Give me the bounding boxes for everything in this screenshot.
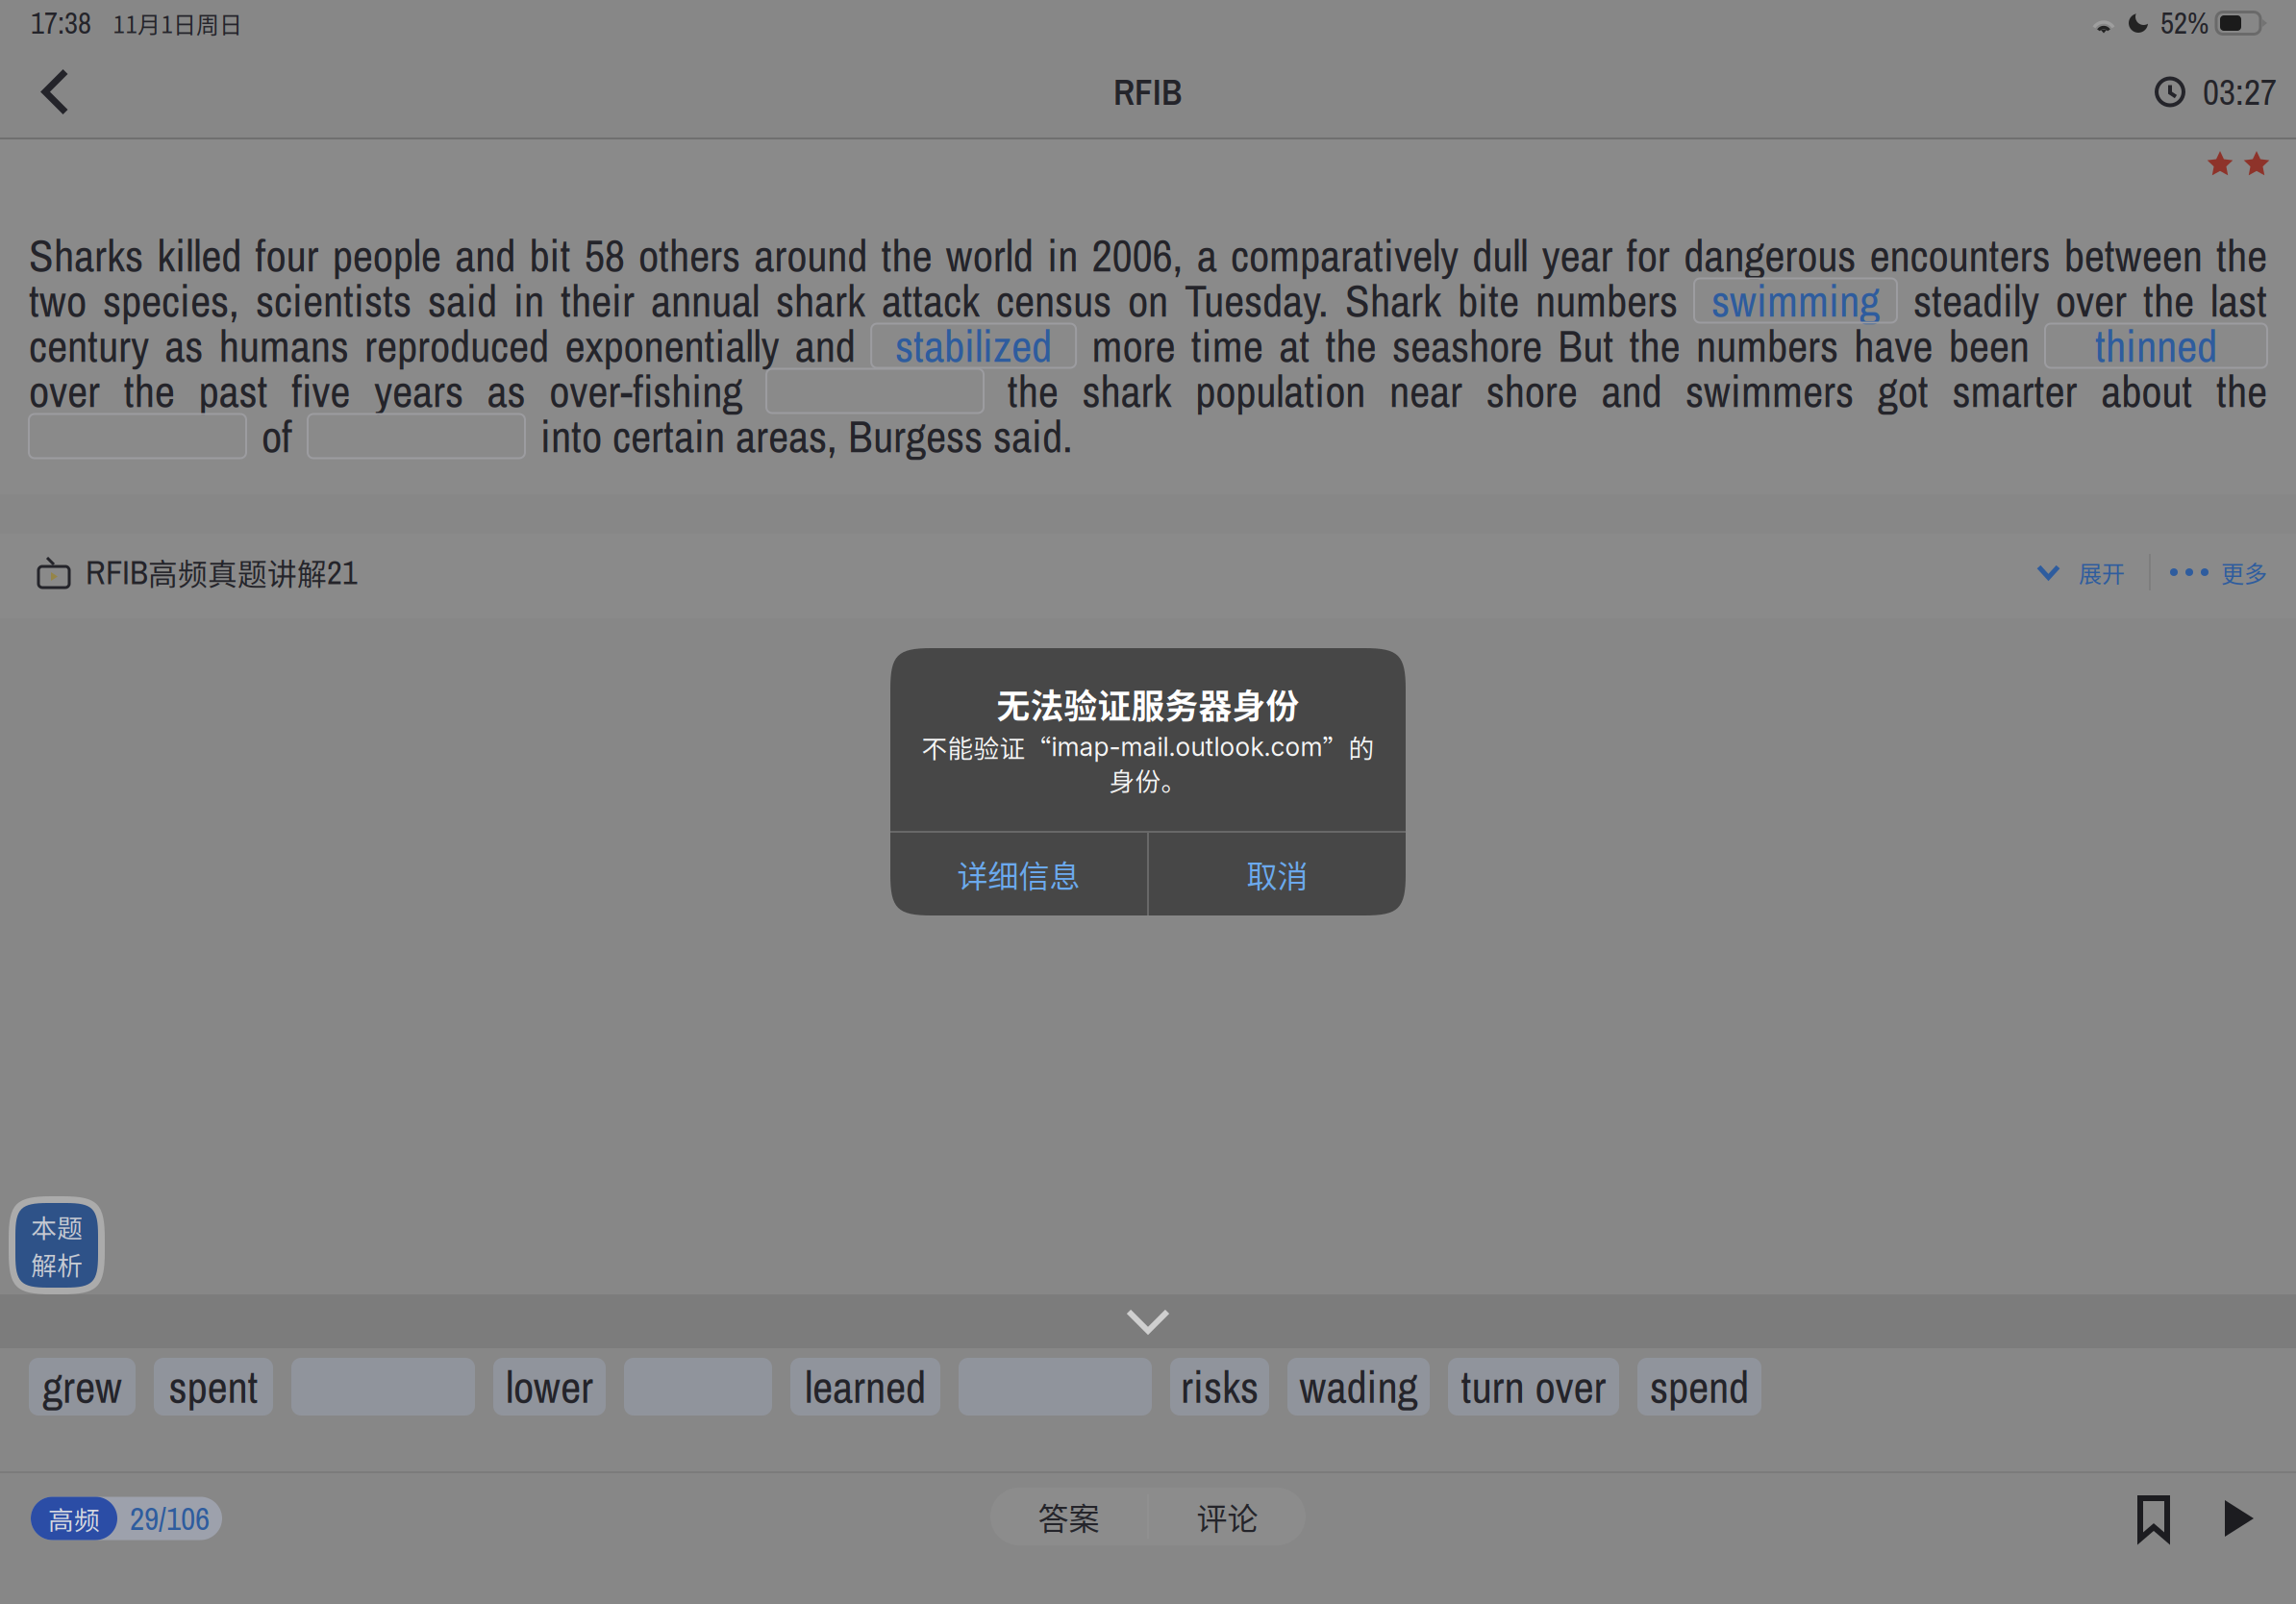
staticText: over-fishing (549, 361, 743, 421)
staticText: last (2210, 270, 2267, 331)
staticText: 身份。 (1109, 761, 1187, 798)
staticText: the (1629, 316, 1680, 376)
staticText: year (1542, 225, 1613, 286)
staticText: grew (42, 1356, 122, 1417)
staticText: time (1191, 316, 1263, 376)
staticText: and (1601, 361, 1662, 421)
button[interactable]: 评论 (1149, 1488, 1306, 1545)
staticText: and (795, 316, 856, 376)
staticText: for (1627, 225, 1670, 286)
staticText: century (29, 316, 149, 376)
staticText: numbers (1696, 316, 1838, 376)
button[interactable]: Empty answer blank (308, 414, 525, 458)
button[interactable]: 高频 (31, 1497, 222, 1540)
button[interactable]: grew (29, 1358, 136, 1416)
staticText: 高频 (48, 1500, 100, 1537)
button[interactable]: Collapse word bank (0, 1294, 2296, 1348)
button[interactable]: 详细信息 (890, 833, 1147, 915)
button[interactable]: Difficulty star (2207, 150, 2234, 178)
staticText: learned (805, 1356, 926, 1417)
staticText: been (1949, 316, 2029, 376)
button[interactable]: Question analysis (9, 1196, 105, 1294)
button[interactable]: Empty answer blank (766, 369, 984, 413)
button[interactable]: thinned (2045, 324, 2267, 368)
button[interactable]: risks (1170, 1358, 1269, 1416)
staticText: census (996, 270, 1111, 331)
button[interactable]: swimming (1694, 278, 1897, 323)
staticText: two (29, 270, 87, 331)
staticText: RFIB (1113, 68, 1183, 116)
button[interactable]: Empty answer blank (29, 414, 246, 458)
staticText: species, (103, 270, 239, 331)
staticText: into certain areas, Burgess said. (540, 406, 1073, 466)
staticText: Shark (1345, 270, 1441, 331)
staticText: as (487, 361, 526, 421)
staticText: 21 (327, 550, 358, 595)
staticText: Tuesday. (1185, 270, 1329, 331)
staticText: others (638, 225, 740, 286)
button[interactable]: Timer 03:27 (2157, 46, 2277, 138)
button[interactable]: stabilized (871, 324, 1076, 368)
button[interactable]: spent (154, 1358, 273, 1416)
button[interactable]: lower (493, 1358, 606, 1416)
staticText: 58 (584, 225, 625, 286)
staticText: scientists (256, 270, 412, 331)
button[interactable]: 更多 (2175, 555, 2267, 589)
button[interactable]: 展开 (2036, 555, 2125, 589)
button[interactable]: RFIB (38, 550, 358, 595)
staticText: dull (1472, 225, 1528, 286)
staticText: world (946, 225, 1033, 286)
button[interactable]: 取消 (1149, 833, 1406, 915)
staticText: Sharks (29, 225, 143, 286)
staticText: in (1047, 225, 1078, 286)
button[interactable]: learned (790, 1358, 940, 1416)
staticText: dangerous (1684, 225, 1856, 286)
staticText: lower (506, 1356, 593, 1417)
staticText: four (255, 225, 319, 286)
staticText: exponentially (565, 316, 779, 376)
button[interactable]: turn over (1448, 1358, 1619, 1416)
staticText: 2006, (1092, 225, 1183, 286)
button[interactable]: Difficulty star (2243, 150, 2270, 178)
button[interactable]: spend (1637, 1358, 1761, 1416)
staticText: people (333, 225, 441, 286)
button[interactable]: Bookmark (2108, 1495, 2200, 1541)
staticText: RFIB (86, 550, 148, 595)
button[interactable]: 答案 (990, 1488, 1147, 1545)
staticText: the (2143, 270, 2194, 331)
staticText: bite (1458, 270, 1519, 331)
button[interactable]: Play audio (2200, 1495, 2277, 1541)
staticText: years (374, 361, 463, 421)
button[interactable]: Back (25, 46, 86, 138)
staticText: spend (1650, 1356, 1749, 1417)
staticText: 展开 (2079, 555, 2125, 589)
staticText: 更多 (2221, 555, 2267, 589)
staticText: annual (651, 270, 760, 331)
staticText: a (1197, 225, 1217, 286)
staticText: smarter (1952, 361, 2077, 421)
staticText: 不能验证“ (922, 728, 1051, 765)
staticText: thinned (2095, 316, 2217, 376)
staticText: stabilized (895, 316, 1052, 376)
staticText: around (754, 225, 868, 286)
staticText: between (2064, 225, 2202, 286)
staticText: imap-mail.outlook.com (1051, 731, 1323, 762)
staticText: ”的 (1323, 728, 1374, 765)
staticText: seashore (1392, 316, 1542, 376)
staticText: over (2056, 270, 2127, 331)
button[interactable]: wading (1287, 1358, 1430, 1416)
staticText: 高频真题讲解 (148, 551, 327, 594)
staticText: 03:27 (2203, 68, 2277, 116)
staticText: have (1854, 316, 1933, 376)
staticText: humans (219, 316, 349, 376)
staticText: their (561, 270, 635, 331)
staticText: killed (157, 225, 242, 286)
staticText: 52% (2160, 3, 2209, 43)
staticText: the (1325, 316, 1376, 376)
staticText: 无法验证服务器身份 (997, 680, 1299, 728)
staticText: near (1389, 361, 1462, 421)
staticText: in (513, 270, 544, 331)
